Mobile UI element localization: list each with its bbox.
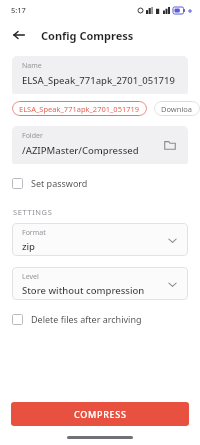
button[interactable]: ELSA_Speak_771apk_2701_051719 — [12, 101, 147, 116]
staticText: COMPRESS — [74, 408, 127, 420]
button[interactable]: Expand Level — [165, 277, 179, 291]
staticText: zip — [22, 240, 35, 253]
button[interactable]: Expand Format — [165, 233, 179, 247]
button[interactable]: Set password — [0, 173, 200, 193]
staticText: Level — [22, 272, 39, 282]
staticText: Set password — [31, 177, 88, 189]
staticText: ELSA_Speak_771apk_2701_051719 — [22, 74, 175, 87]
staticText: Folder — [22, 131, 43, 141]
button[interactable]: COMPRESS — [11, 402, 189, 426]
staticText: Delete files after archiving — [31, 313, 142, 325]
button[interactable]: Delete files after archiving — [0, 309, 200, 329]
staticText: SETTINGS — [13, 207, 53, 217]
staticText: Format — [22, 228, 46, 238]
staticText: ELSA_Speak_771apk_2701_051719 — [19, 104, 140, 114]
button[interactable]: Level — [12, 267, 188, 300]
button[interactable]: Back — [9, 25, 29, 45]
staticText: Config Compress — [41, 28, 134, 43]
button[interactable]: Choose folder — [160, 135, 180, 155]
button[interactable]: Name — [12, 56, 188, 94]
staticText: /AZIPMaster/Compressed — [22, 144, 139, 157]
staticText: 5:17 — [11, 5, 26, 15]
button[interactable]: Download_27 — [154, 101, 200, 116]
button[interactable]: Folder — [12, 126, 188, 164]
staticText: Store without compression — [22, 284, 145, 297]
staticText: Name — [22, 61, 42, 71]
button[interactable]: Format — [12, 223, 188, 256]
staticText: Download_27 — [161, 104, 193, 114]
